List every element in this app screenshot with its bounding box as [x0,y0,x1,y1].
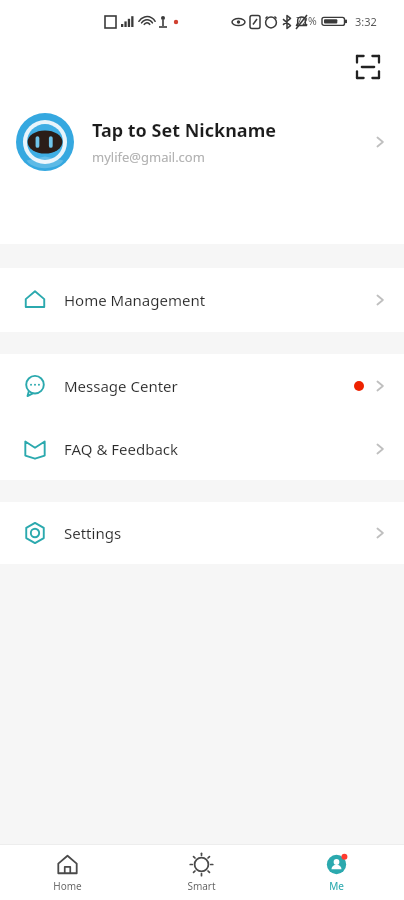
staticText: Tap to Set Nickname [92,118,276,143]
staticText: 3:32 [355,14,377,29]
button[interactable]: Smart [134,845,269,900]
button[interactable]: Tap to Set Nickname [0,92,404,192]
button[interactable]: Home Management [0,268,404,332]
staticText: FAQ & Feedback [64,439,372,459]
staticText: Home Management [64,290,372,310]
button[interactable]: Me [269,845,404,900]
staticText: Smart [187,879,216,893]
staticText: Home [53,879,82,893]
button[interactable]: Settings [0,502,404,564]
staticText: Message Center [64,376,354,396]
staticText: Settings [64,523,372,543]
button[interactable]: FAQ & Feedback [0,418,404,480]
staticText: Me [329,879,344,893]
button[interactable]: Scan [348,47,388,87]
button[interactable]: Home [0,845,134,900]
staticText: 72% [296,14,317,28]
button[interactable]: Message Center [0,354,404,418]
staticText: mylife@gmail.com [92,148,205,166]
